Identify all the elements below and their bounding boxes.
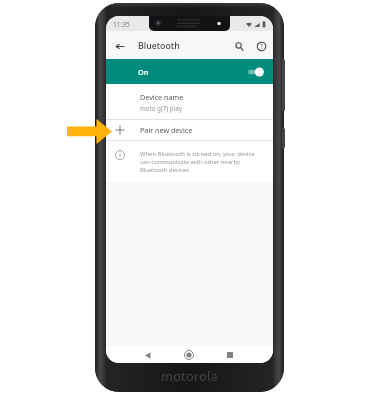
staticText: On — [138, 67, 149, 77]
staticText: motorola — [161, 367, 218, 384]
button[interactable]: On — [106, 59, 273, 84]
button[interactable]: Home — [181, 347, 197, 363]
staticText: moto g(7) play — [140, 104, 182, 112]
staticText: Pair new device — [140, 125, 193, 135]
button[interactable]: Recent apps — [222, 347, 238, 363]
staticText: ? — [260, 42, 263, 51]
staticText: When Bluetooth is turned on, your device… — [140, 150, 258, 174]
button[interactable]: Back — [106, 33, 133, 59]
button[interactable]: Search — [228, 33, 250, 59]
staticText: 11:35 — [113, 20, 130, 29]
staticText: Bluetooth — [138, 40, 180, 52]
staticText: Device name — [140, 92, 184, 102]
button[interactable]: Help — [250, 33, 272, 59]
button[interactable]: Back — [140, 347, 156, 363]
button[interactable]: Device name — [106, 84, 273, 119]
button[interactable]: Pair new device — [106, 120, 273, 140]
